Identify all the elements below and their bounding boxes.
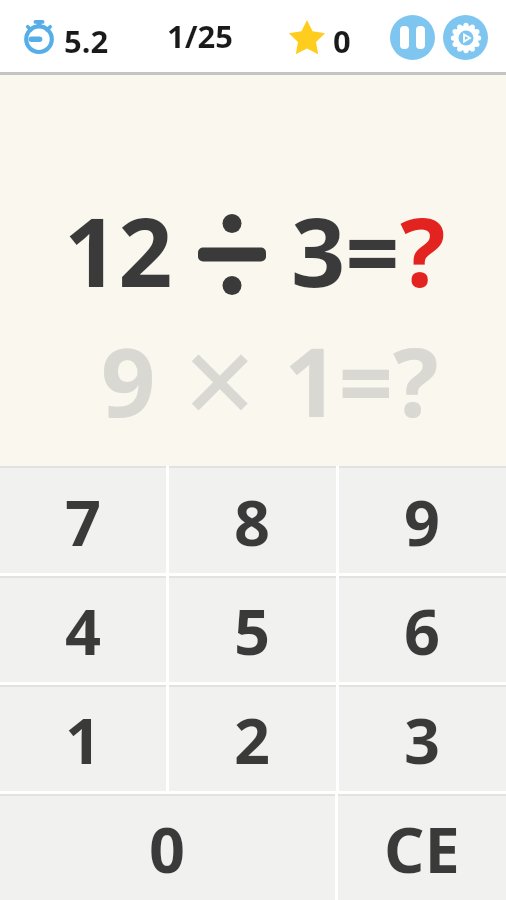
staticText: 8 — [234, 479, 271, 565]
button[interactable]: 5 — [169, 576, 336, 682]
staticText: 3 — [404, 697, 441, 783]
staticText: 12 — [64, 185, 173, 314]
button[interactable]: 2 — [169, 685, 336, 791]
staticText: 5.2 — [64, 20, 109, 62]
staticText: 6 — [404, 588, 441, 674]
staticText: CE — [384, 806, 460, 892]
staticText: 9 — [404, 479, 441, 565]
button[interactable] — [443, 15, 488, 60]
button[interactable]: 6 — [339, 576, 506, 682]
staticText: 9 ✕ 1=? — [101, 315, 439, 444]
button[interactable]: 1 — [0, 685, 166, 791]
staticText: 0 — [333, 20, 351, 62]
staticText: 7 — [65, 479, 102, 565]
button[interactable]: 9 — [339, 466, 506, 573]
button[interactable]: CE — [338, 794, 506, 900]
staticText: 5 — [234, 588, 271, 674]
staticText: 4 — [65, 588, 102, 674]
button[interactable]: 0 — [0, 794, 335, 900]
button[interactable]: 3 — [339, 685, 506, 791]
button[interactable]: 4 — [0, 576, 166, 682]
button[interactable]: 7 — [0, 466, 166, 573]
staticText: 2 — [234, 697, 271, 783]
staticText: 1 — [65, 697, 102, 783]
staticText: ? — [400, 185, 446, 314]
button[interactable]: 8 — [169, 466, 336, 573]
staticText: 3= — [291, 185, 400, 314]
button[interactable] — [390, 15, 435, 60]
staticText: 0 — [149, 806, 186, 892]
staticText: 1/25 — [167, 15, 234, 57]
